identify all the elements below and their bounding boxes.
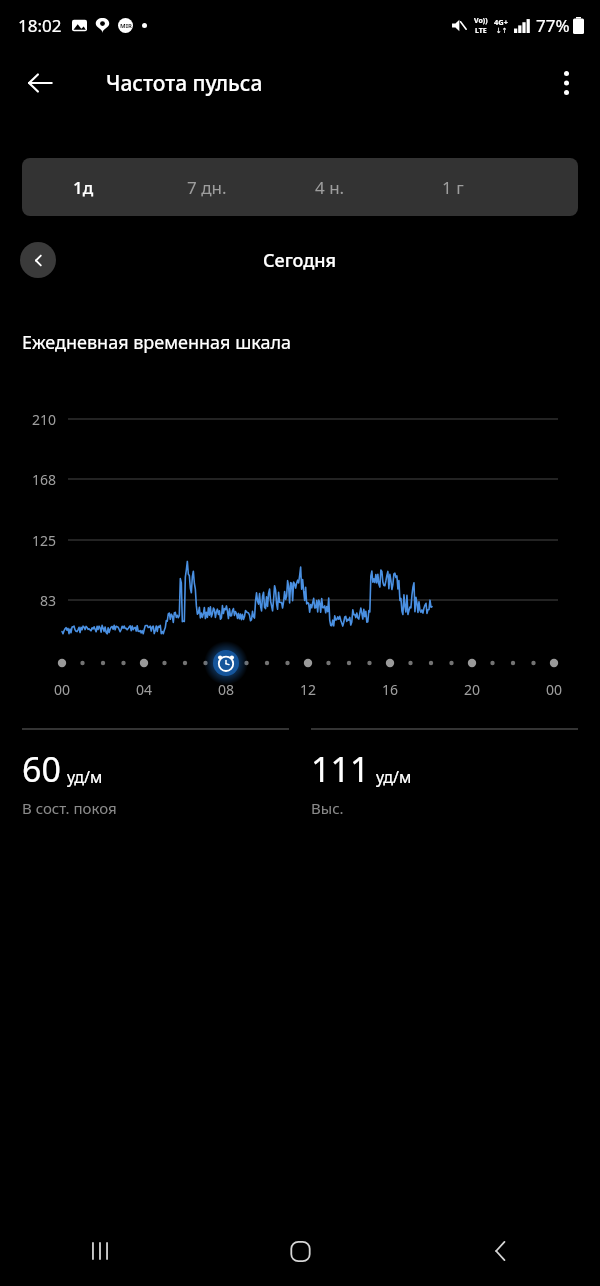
staticText: Vo)) (474, 16, 488, 26)
staticText: 4G+ (494, 17, 509, 27)
staticText: Ежедневная временная шкала (22, 330, 292, 355)
staticText: 12 (288, 680, 328, 699)
staticText: В сост. покоя (22, 798, 117, 818)
staticText: 08 (206, 680, 246, 699)
staticText: 77% (536, 14, 570, 37)
button[interactable]: Recents (0, 1216, 200, 1286)
staticText: 83 (0, 591, 56, 610)
staticText: 111 (311, 746, 370, 792)
staticText: 16 (370, 680, 410, 699)
button[interactable]: 1д (22, 158, 145, 216)
staticText: 60 (22, 746, 61, 792)
staticText: 1 г (442, 176, 464, 199)
button[interactable]: 4 н. (268, 158, 391, 216)
button[interactable]: Previous day (20, 242, 56, 278)
button[interactable]: Home (200, 1216, 400, 1286)
staticText: MIR (120, 22, 132, 30)
staticText: уд/м (67, 766, 103, 788)
button[interactable]: 111 (311, 729, 578, 818)
staticText: 125 (0, 531, 56, 550)
staticText: 4 н. (315, 176, 345, 199)
button[interactable]: Back (400, 1216, 600, 1286)
staticText: ↓↑ (496, 27, 508, 35)
button[interactable]: 60 (22, 729, 289, 818)
staticText: 04 (124, 680, 164, 699)
button[interactable]: 7 дн. (145, 158, 268, 216)
staticText: 210 (0, 410, 56, 429)
button[interactable]: More options (544, 61, 588, 105)
button[interactable]: Back (16, 59, 64, 107)
staticText: 00 (534, 680, 574, 699)
staticText: 18:02 (18, 14, 62, 37)
staticText: уд/м (376, 766, 412, 788)
staticText: 00 (42, 680, 82, 699)
staticText: LTE (475, 26, 487, 36)
staticText: Выс. (311, 798, 344, 818)
staticText: 7 дн. (187, 176, 227, 199)
staticText: Сегодня (263, 248, 337, 273)
staticText: 20 (452, 680, 492, 699)
staticText: 1д (73, 176, 94, 199)
staticText: Частота пульса (106, 69, 263, 98)
staticText: 168 (0, 470, 56, 489)
button[interactable]: 1 г (391, 158, 514, 216)
